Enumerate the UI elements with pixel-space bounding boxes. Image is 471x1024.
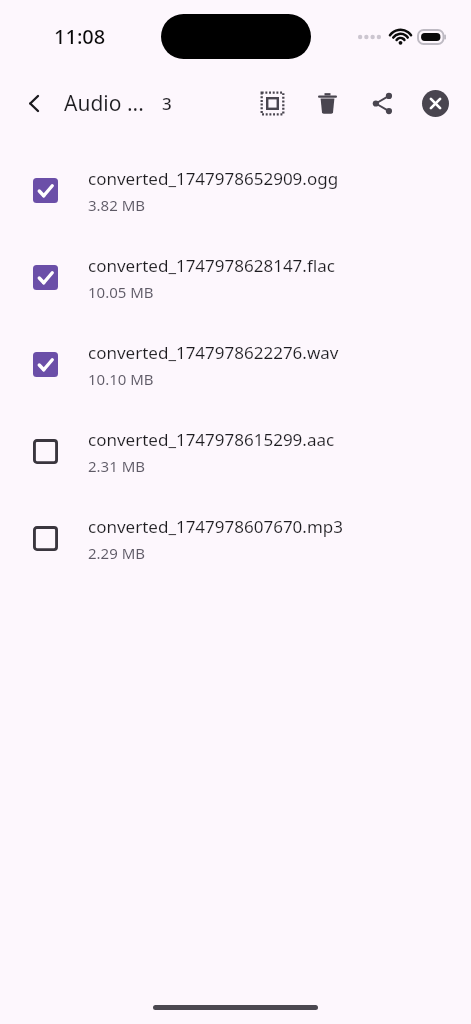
staticText: converted_1747978628147.flac [88,254,335,277]
staticText: 10.05 MB [88,282,154,302]
button[interactable]: converted_1747978652909.ogg [0,147,471,234]
staticText: 3 [162,92,172,115]
staticText: converted_1747978615299.aac [88,428,335,451]
staticText: converted_1747978652909.ogg [88,167,339,190]
staticText: converted_1747978607670.mp3 [88,515,343,538]
staticText: converted_1747978622276.wav [88,341,339,364]
button[interactable]: Back [12,81,56,125]
staticText: Audio ... [64,89,144,118]
staticText: 2.29 MB [88,543,146,563]
button[interactable]: Select all [250,81,294,125]
button[interactable]: converted_1747978607670.mp3 [0,495,471,582]
button[interactable]: converted_1747978628147.flac [0,234,471,321]
button[interactable]: Close [413,81,457,125]
button[interactable]: converted_1747978622276.wav [0,321,471,408]
staticText: 11:08 [54,23,106,50]
staticText: 2.31 MB [88,456,146,476]
button[interactable]: converted_1747978615299.aac [0,408,471,495]
staticText: 10.10 MB [88,369,154,389]
button[interactable]: Share [360,81,404,125]
staticText: 3.82 MB [88,195,146,215]
button[interactable]: Delete [305,81,349,125]
